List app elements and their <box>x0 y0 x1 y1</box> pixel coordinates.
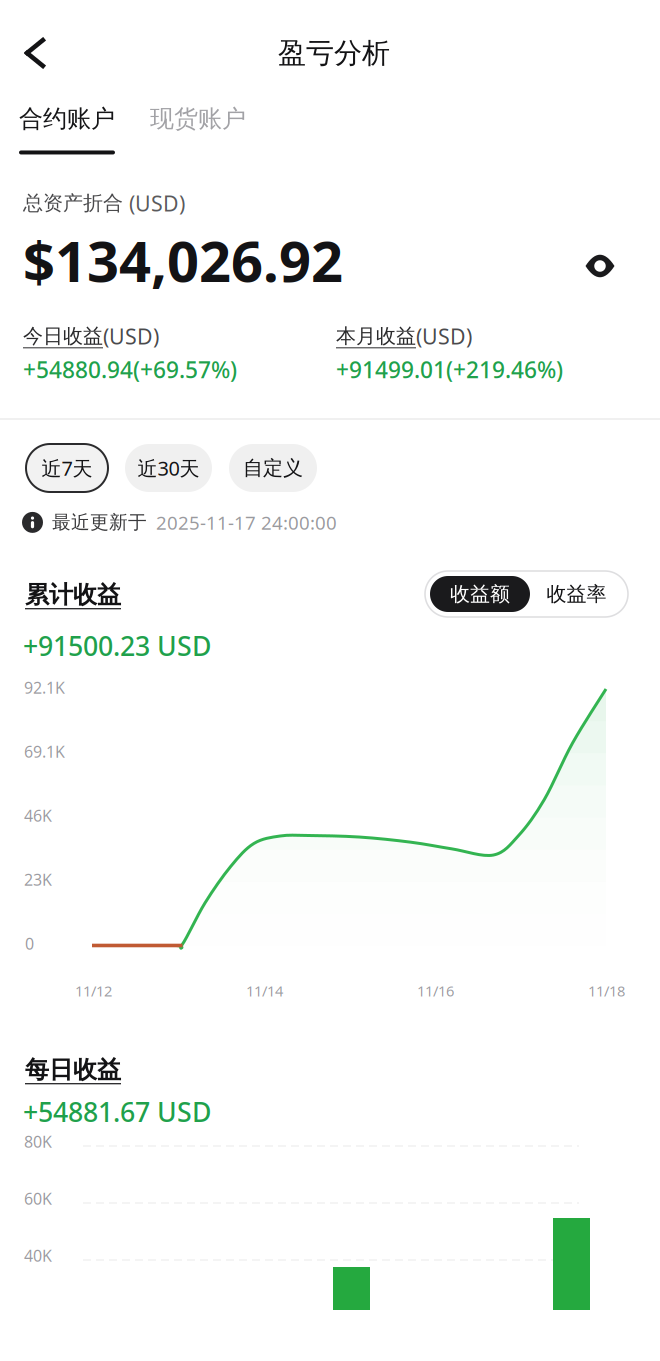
staticText: 46K <box>24 805 52 826</box>
staticText: 11/12 <box>75 981 112 1000</box>
button[interactable]: 近30天 <box>125 444 212 492</box>
staticText: 每日收益 <box>25 1055 121 1084</box>
staticText: 收益率 <box>546 582 606 606</box>
button[interactable]: 自定义 <box>229 444 317 492</box>
button[interactable]: 收益额 <box>430 576 530 612</box>
staticText: (USD) <box>416 322 472 350</box>
button[interactable]: 收益率 <box>530 576 623 612</box>
staticText: 总资产折合 <box>23 191 123 215</box>
staticText: 盈亏分析 <box>278 36 390 70</box>
staticText: 自定义 <box>243 456 303 480</box>
staticText: +54880.94(+69.57%) <box>23 354 237 384</box>
staticText: 23K <box>24 869 52 890</box>
staticText: 近7天 <box>41 455 92 481</box>
staticText: 现货账户 <box>150 104 246 133</box>
staticText: $134,026.92 <box>23 223 343 297</box>
staticText: +91500.23 USD <box>23 628 211 663</box>
staticText: +54881.67 USD <box>23 1094 211 1129</box>
staticText: 92.1K <box>24 677 65 698</box>
staticText: (USD) <box>123 189 185 217</box>
button[interactable]: 合约账户 <box>19 104 115 154</box>
staticText: 60K <box>24 1188 52 1209</box>
button[interactable]: Back <box>8 26 62 80</box>
staticText: 0 <box>25 933 34 954</box>
staticText: 69.1K <box>24 741 65 762</box>
button[interactable]: 近7天 <box>26 444 108 492</box>
staticText: 11/18 <box>588 981 625 1000</box>
staticText: 累计收益 <box>25 580 121 609</box>
staticText: 40K <box>24 1245 52 1266</box>
staticText: 11/16 <box>417 981 454 1000</box>
staticText: 今日收益 <box>23 324 103 348</box>
staticText: 近30天 <box>137 455 199 481</box>
staticText: 收益额 <box>450 582 510 606</box>
staticText: 最近更新于 <box>52 511 147 534</box>
button[interactable]: Toggle balance visibility <box>572 238 628 294</box>
staticText: (USD) <box>103 322 159 350</box>
staticText: 11/14 <box>246 981 283 1000</box>
staticText: 80K <box>24 1131 52 1152</box>
staticText: 本月收益 <box>336 324 416 348</box>
staticText: 合约账户 <box>19 104 115 133</box>
button[interactable]: 现货账户 <box>150 104 246 133</box>
staticText: 2025-11-17 24:00:00 <box>156 510 337 535</box>
staticText: +91499.01(+219.46%) <box>336 354 563 384</box>
